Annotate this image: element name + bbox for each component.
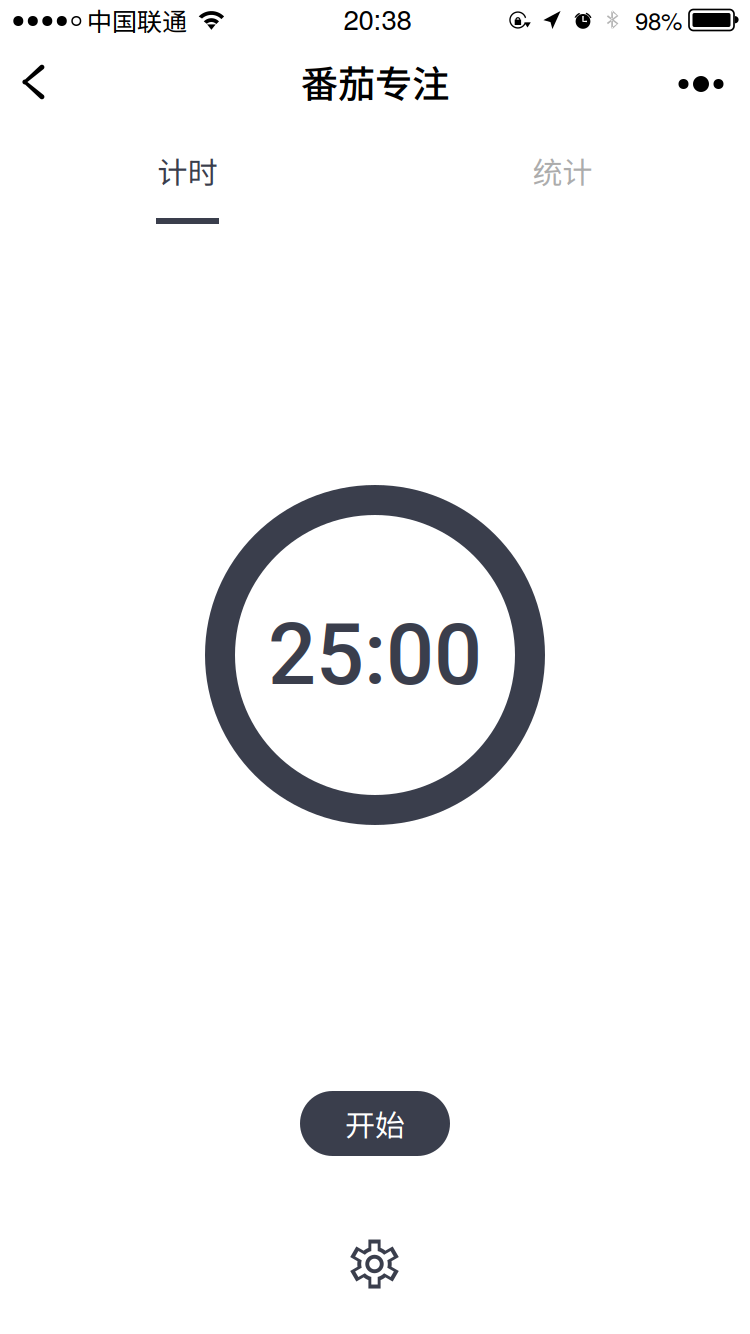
button[interactable]: 计时 xyxy=(0,112,375,232)
staticText: 番茄专注 xyxy=(301,54,449,109)
staticText: 计时 xyxy=(157,149,217,192)
staticText: 25:00 xyxy=(268,605,482,705)
button[interactable]: 设置 xyxy=(335,1239,415,1289)
button[interactable]: 统计 xyxy=(375,112,750,232)
staticText: 中国联通 xyxy=(87,2,187,38)
button[interactable]: 返回 xyxy=(0,40,67,112)
button[interactable]: 更多 xyxy=(660,40,750,112)
button[interactable]: 开始 xyxy=(300,1091,450,1156)
staticText: 98% xyxy=(635,3,682,37)
staticText: 20:38 xyxy=(343,0,411,38)
staticText: 统计 xyxy=(532,149,592,192)
staticText: 开始 xyxy=(345,1102,405,1145)
